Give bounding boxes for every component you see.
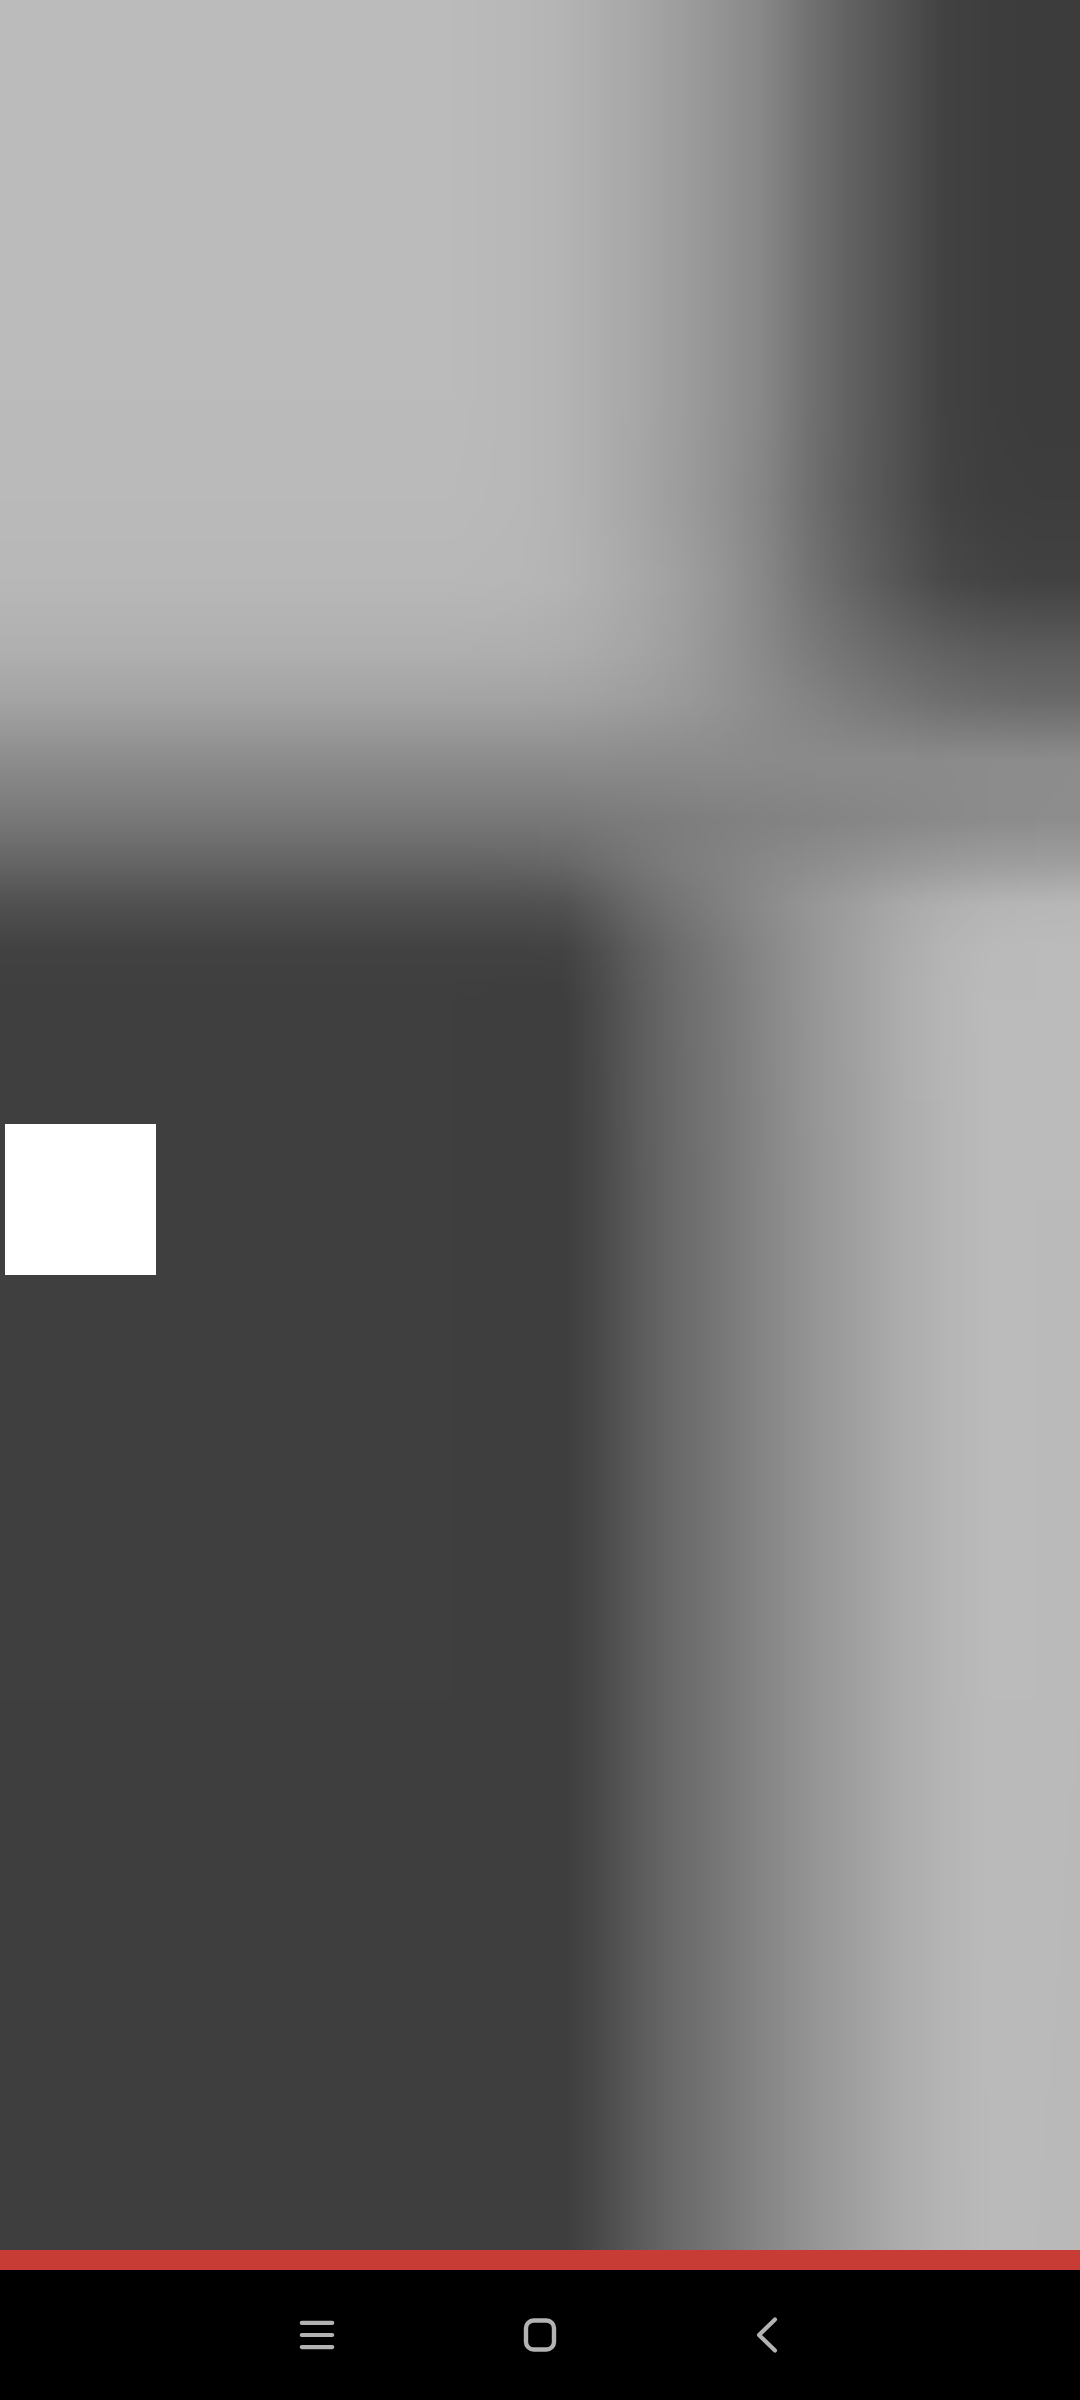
button[interactable]: Back [707,2275,827,2395]
button[interactable]: Recent apps [257,2275,377,2395]
button[interactable]: Home [480,2275,600,2395]
button[interactable]: Tap to focus [0,0,1080,2250]
